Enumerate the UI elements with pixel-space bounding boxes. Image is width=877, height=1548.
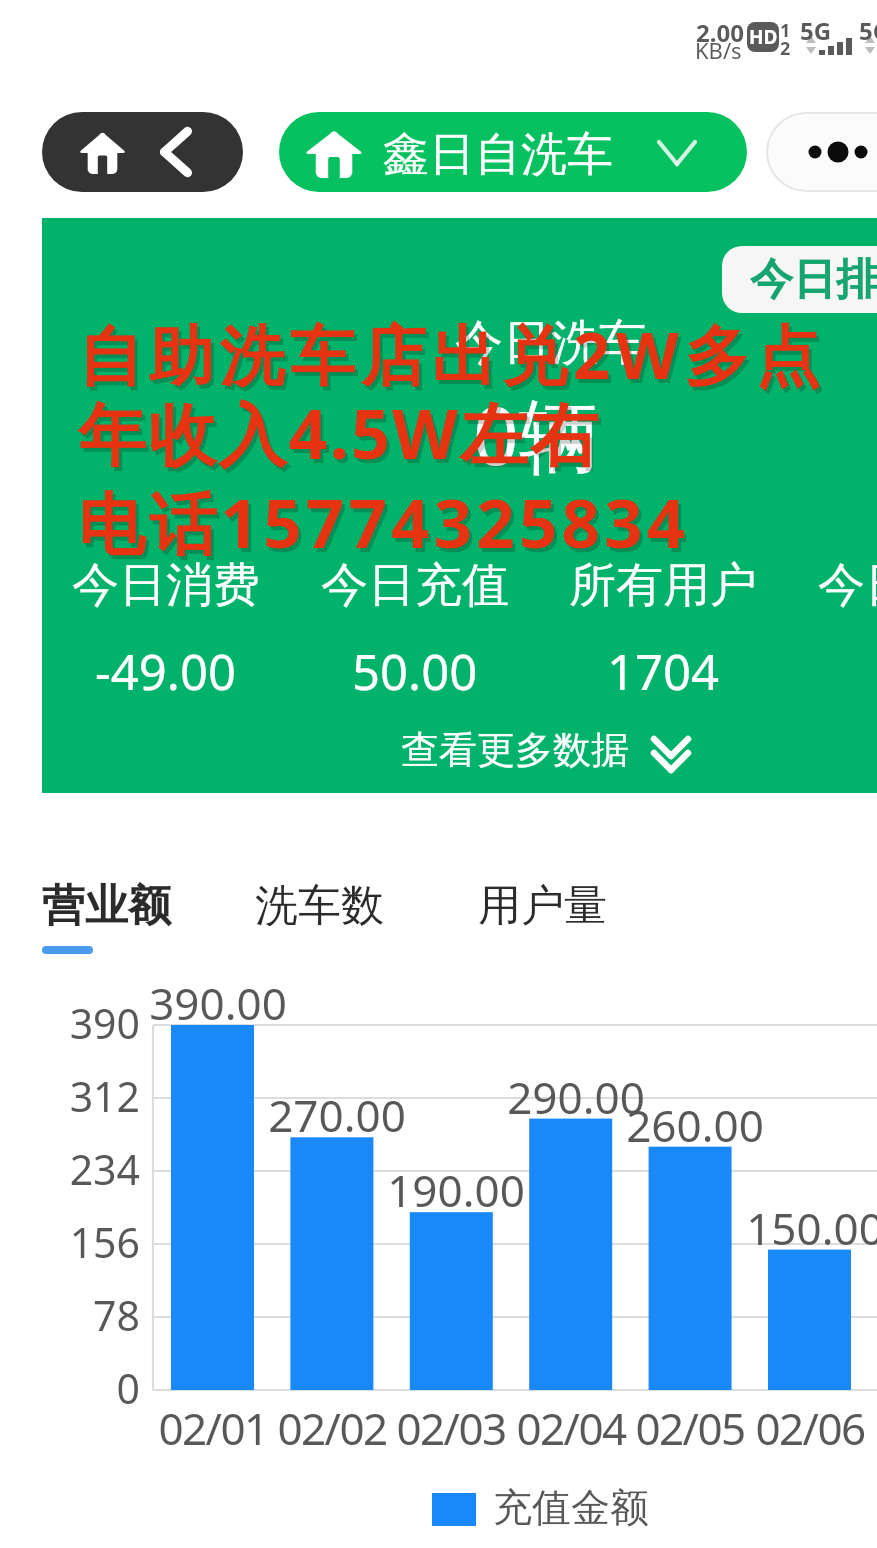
button[interactable]: 鑫日自洗车 (279, 112, 747, 192)
staticText: 02/02 (277, 1398, 387, 1458)
button[interactable]: More options (766, 112, 877, 192)
staticText: 年收入4.5W左右 (81, 390, 604, 483)
button[interactable]: 营业额 (42, 879, 171, 954)
staticText: 290.00 (507, 1067, 645, 1127)
staticText: 自助洗车店出兑2W多点 (78, 310, 826, 399)
staticText: 78 (93, 1287, 140, 1343)
staticText: 今日洗车 (455, 313, 647, 373)
staticText: 5G (859, 14, 877, 47)
staticText: 充值金额 (493, 1483, 649, 1532)
staticText: HD (749, 24, 778, 50)
staticText: 390 (69, 995, 140, 1051)
staticText: 0 (116, 1360, 140, 1416)
staticText: 今日消费 (72, 556, 260, 615)
staticText: -49.00 (95, 638, 237, 705)
staticText: 02/04 (516, 1398, 626, 1458)
staticText: 今日充值 (321, 556, 509, 615)
staticText: 0辆 (473, 379, 599, 488)
button[interactable]: 充值金额 (432, 1485, 649, 1534)
staticText: 今日新增 (818, 556, 877, 615)
button[interactable]: 洗车数 (255, 879, 384, 954)
staticText: 190.00 (387, 1160, 525, 1220)
staticText: 02/06 (755, 1398, 865, 1458)
staticText: KB/s (695, 35, 742, 65)
staticText: 电话15774325834 (81, 480, 693, 572)
staticText: 查看更多数据 (401, 726, 629, 774)
staticText: 270.00 (268, 1085, 406, 1145)
staticText: 234 (69, 1141, 140, 1197)
staticText: 5G (800, 14, 832, 47)
button[interactable]: 今日充值 (291, 556, 539, 706)
staticText: 50.00 (352, 638, 478, 705)
staticText: 156 (69, 1214, 140, 1270)
staticText: 2.00 (696, 16, 744, 49)
staticText: 390.00 (149, 973, 287, 1033)
button[interactable]: 今日新增 (788, 556, 877, 706)
staticText: 自助洗车店出兑2W多点 (81, 314, 829, 403)
button[interactable]: 用户量 (478, 879, 607, 954)
staticText: 1704 (607, 638, 720, 705)
staticText: 02/03 (396, 1398, 506, 1458)
staticText: 营业额 (42, 879, 171, 933)
button[interactable]: Home and Back (42, 112, 243, 192)
button[interactable]: 查看更多数据 (401, 726, 691, 774)
button[interactable]: 今日排行 (722, 246, 877, 313)
staticText: 用户量 (478, 879, 607, 933)
staticText: 所有用户 (569, 556, 757, 615)
staticText: 鑫日自洗车 (383, 126, 613, 184)
staticText: 02/01 (158, 1398, 268, 1458)
staticText: 电话15774325834 (78, 476, 690, 568)
staticText: 今日排行 (750, 253, 877, 307)
staticText: 2 (780, 36, 791, 61)
button[interactable]: 今日消费 (42, 556, 290, 706)
staticText: 260.00 (626, 1095, 764, 1155)
staticText: 150.00 (746, 1198, 877, 1258)
staticText: 312 (69, 1068, 140, 1124)
button[interactable]: 所有用户 (539, 556, 787, 706)
staticText: 1 (780, 18, 791, 43)
staticText: 洗车数 (255, 879, 384, 933)
staticText: 02/05 (635, 1398, 745, 1458)
staticText: 年收入4.5W左右 (78, 386, 601, 479)
